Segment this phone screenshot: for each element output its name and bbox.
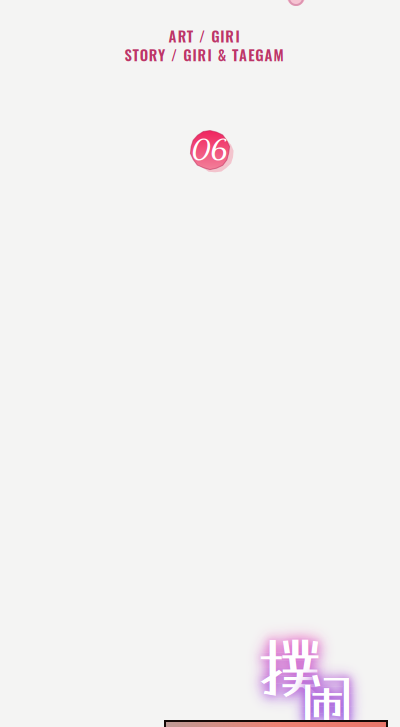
staticText: 闹: [299, 667, 355, 727]
staticText: 闹: [299, 667, 355, 727]
staticText: 撲: [256, 629, 323, 707]
staticText: 撲: [256, 629, 323, 707]
staticText: 闹: [299, 667, 355, 727]
staticText: 闹: [299, 667, 355, 727]
staticText: 闹: [299, 667, 355, 727]
staticText: 撲: [256, 629, 323, 707]
staticText: 06: [191, 131, 227, 167]
staticText: 闹: [299, 667, 355, 727]
staticText: 撲: [256, 629, 323, 707]
staticText: 撲: [256, 629, 323, 707]
staticText: 撲: [256, 629, 323, 707]
staticText: STORY / GIRI & TAEGAM: [124, 44, 283, 65]
staticText: 撲: [256, 629, 323, 707]
staticText: 撲: [256, 629, 323, 707]
staticText: 撲: [256, 629, 323, 707]
staticText: 闹: [299, 667, 355, 727]
staticText: 闹: [299, 667, 355, 727]
staticText: 闹: [299, 667, 355, 727]
staticText: 撲: [256, 629, 323, 707]
staticText: 闹: [299, 667, 355, 727]
staticText: ART / GIRI: [169, 25, 239, 47]
staticText: 闹: [299, 667, 355, 727]
staticText: 撲: [256, 629, 323, 707]
staticText: 撲: [256, 629, 323, 707]
staticText: 闹: [299, 667, 355, 727]
staticText: 闹: [299, 667, 355, 727]
staticText: 撲: [256, 629, 323, 707]
